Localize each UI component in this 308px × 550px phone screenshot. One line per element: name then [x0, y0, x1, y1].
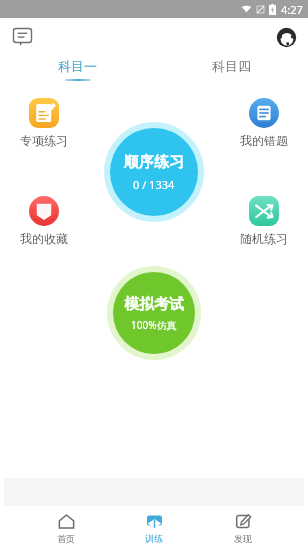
button[interactable]: 训练	[131, 510, 177, 547]
button[interactable]: 我的收藏	[12, 194, 76, 248]
staticText: 顺序练习	[124, 153, 184, 172]
staticText: 科目四	[212, 58, 251, 74]
staticText: 100%仿真	[131, 318, 177, 332]
button[interactable]: 专项练习	[12, 96, 76, 150]
staticText: 训练	[145, 533, 163, 544]
button[interactable]: 顺序练习	[104, 122, 204, 222]
button[interactable]: 发现	[220, 510, 266, 547]
button[interactable]: Customer service	[273, 24, 299, 50]
button[interactable]: 首页	[43, 510, 89, 547]
button[interactable]: 模拟考试	[107, 266, 201, 360]
staticText: 我的错题	[240, 133, 288, 148]
staticText: 4:27	[281, 2, 303, 17]
button[interactable]: 科目一	[40, 56, 115, 83]
staticText: 科目一	[58, 58, 97, 74]
button[interactable]: 科目四	[194, 56, 269, 76]
staticText: 发现	[234, 533, 252, 544]
button[interactable]: 随机练习	[232, 194, 296, 248]
staticText: 我的收藏	[20, 231, 68, 246]
staticText: 模拟考试	[124, 295, 184, 314]
button[interactable]: 我的错题	[232, 96, 296, 150]
staticText: 随机练习	[240, 231, 288, 246]
staticText: 专项练习	[20, 133, 68, 148]
staticText: 0 / 1334	[133, 177, 175, 192]
button[interactable]: Messages	[9, 24, 35, 50]
staticText: 首页	[57, 533, 75, 544]
